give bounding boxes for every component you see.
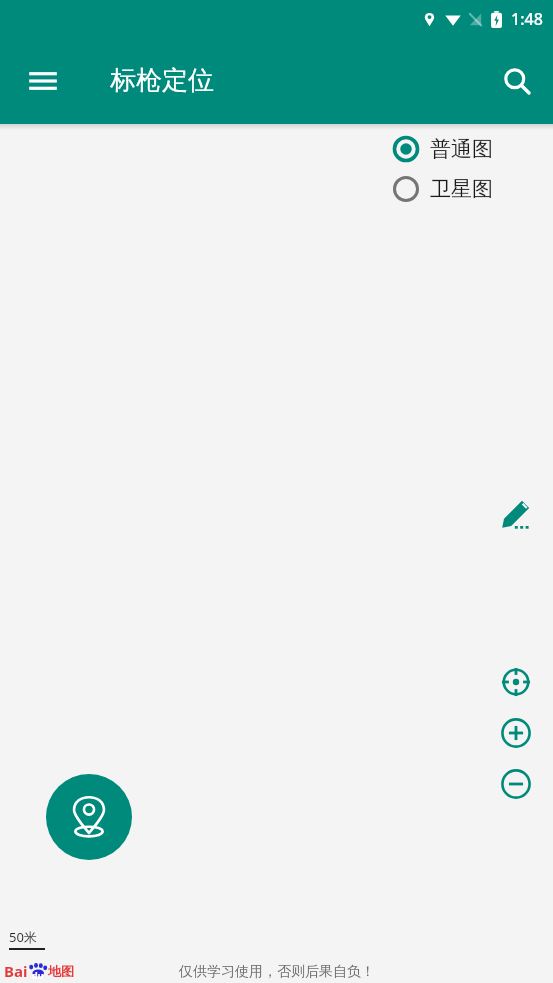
- staticText: 标枪定位: [110, 64, 214, 97]
- staticText: 1:48: [511, 8, 543, 30]
- button[interactable]: Menu: [19, 57, 67, 105]
- button[interactable]: Zoom in: [496, 713, 536, 753]
- staticText: 50米: [9, 928, 37, 946]
- button[interactable]: [0, 0, 553, 983]
- staticText: 卫星图: [430, 176, 493, 202]
- button[interactable]: Search: [493, 57, 541, 105]
- staticText: Bai: [4, 961, 28, 981]
- button[interactable]: Draw: [496, 494, 536, 534]
- button[interactable]: Locate me: [46, 774, 132, 860]
- staticText: 地图: [48, 963, 74, 979]
- button[interactable]: Zoom out: [496, 764, 536, 804]
- button[interactable]: My location: [496, 662, 536, 702]
- staticText: du: [32, 969, 44, 981]
- button[interactable]: 普通图: [390, 133, 497, 165]
- button[interactable]: 卫星图: [390, 173, 497, 205]
- staticText: 仅供学习使用，否则后果自负！: [179, 963, 375, 981]
- staticText: 普通图: [430, 136, 493, 162]
